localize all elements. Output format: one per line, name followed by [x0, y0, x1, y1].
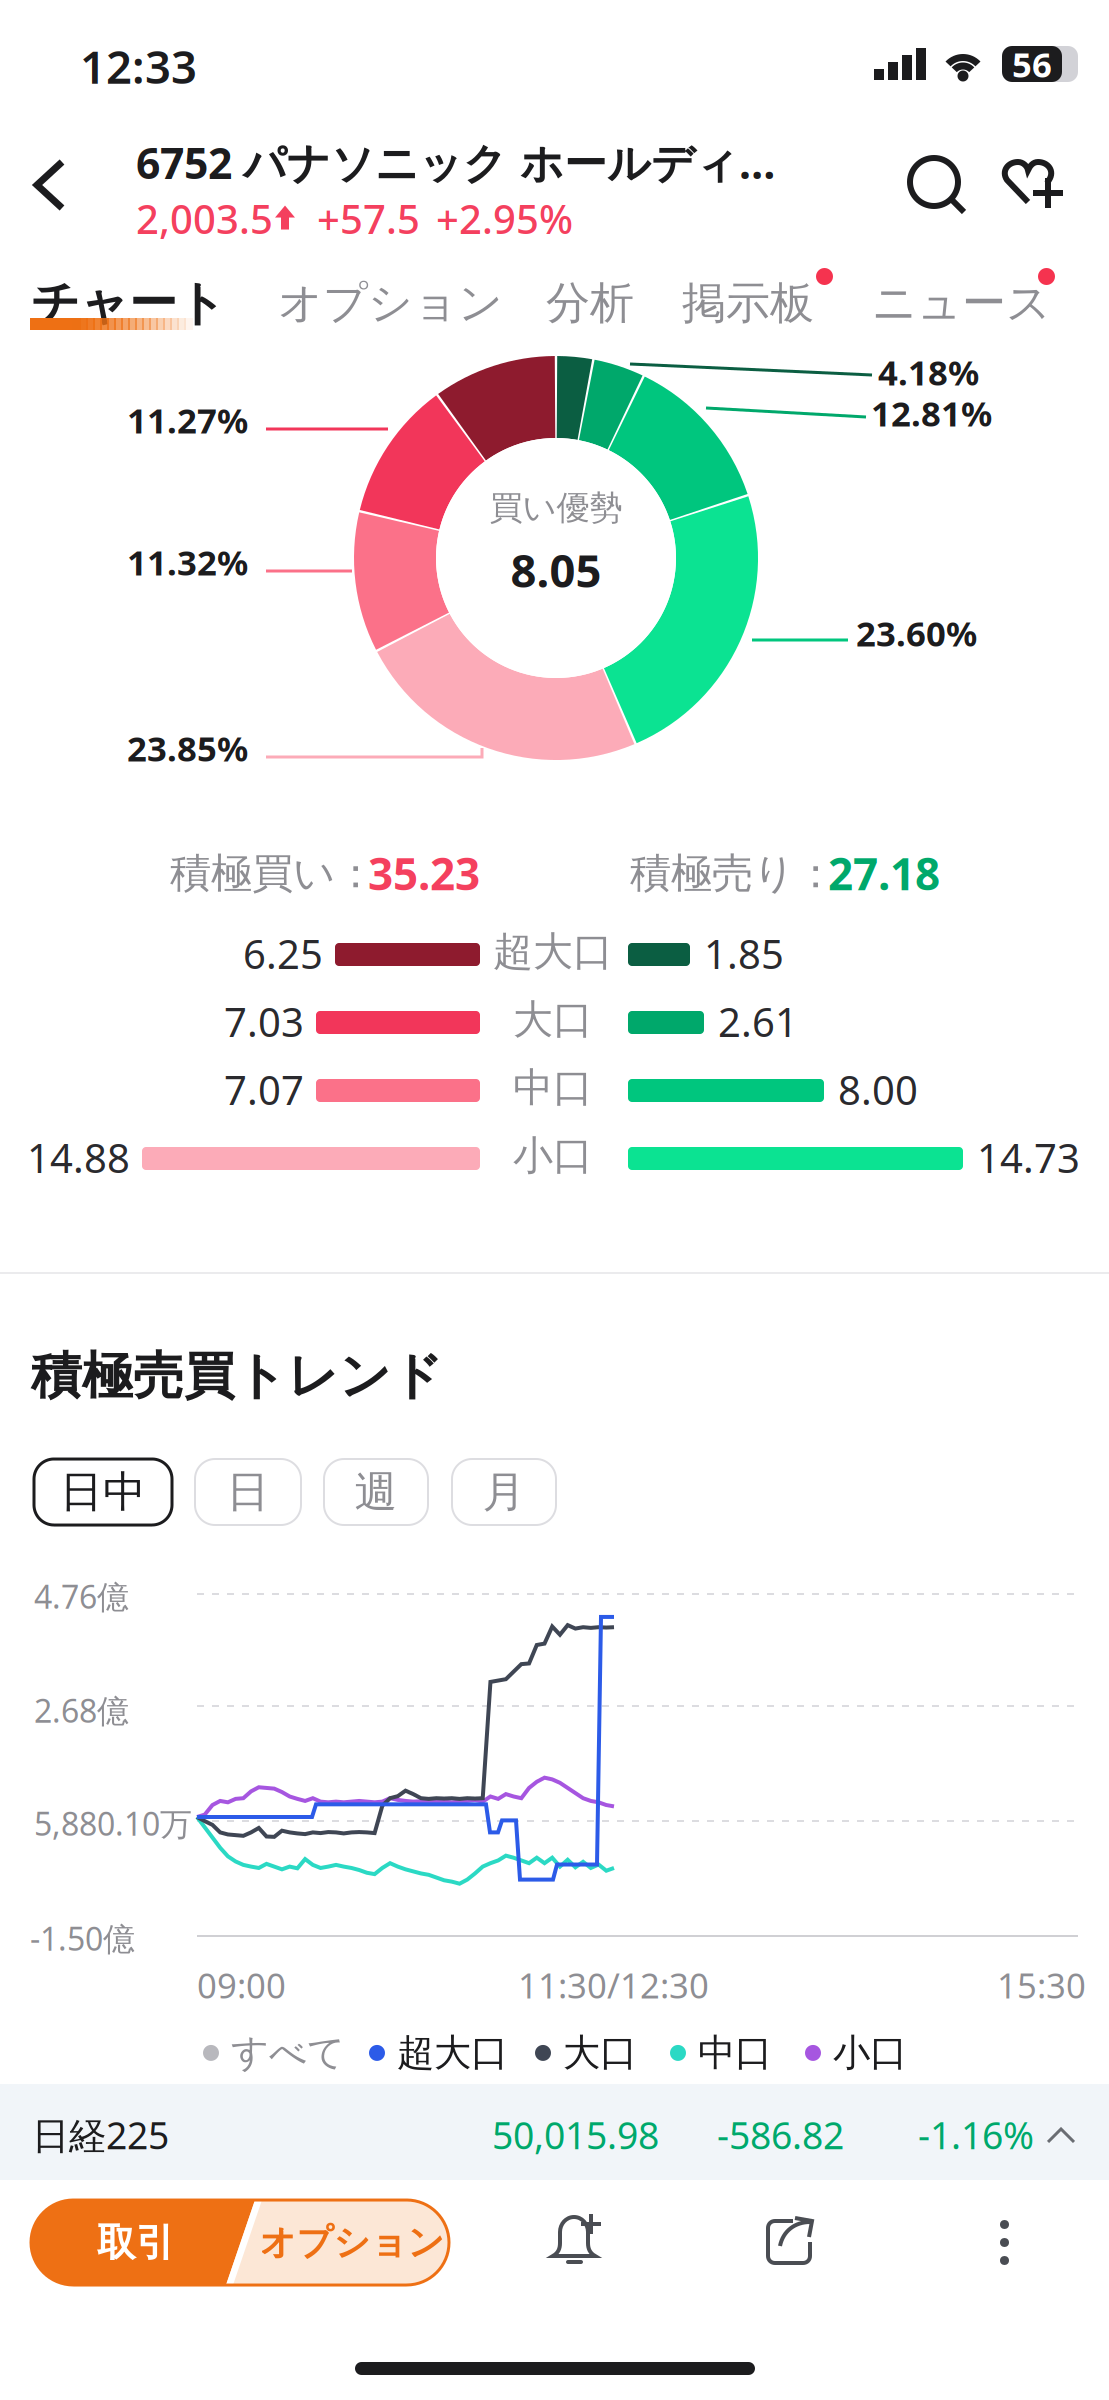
staticText: 2.68億 [34, 1689, 129, 1731]
staticText: 12.81% [871, 390, 992, 436]
staticText: 23.60% [856, 610, 977, 656]
staticText: 27.18 [828, 844, 940, 902]
button[interactable]: チャート [30, 270, 240, 342]
button[interactable]: 週 [324, 1459, 428, 1525]
button[interactable]: Add to watchlist [984, 128, 1096, 232]
button[interactable]: Search [888, 128, 992, 232]
staticText: 超大口 [397, 2030, 508, 2076]
staticText: -1.50億 [30, 1917, 135, 1959]
staticText: 09:00 [197, 1962, 286, 2008]
button[interactable]: 日中 [34, 1459, 172, 1525]
button[interactable]: オプション [278, 276, 503, 330]
staticText: 5,880.10万 [34, 1802, 192, 1844]
staticText: +2.95% [436, 192, 573, 245]
staticText: 取引 [97, 2219, 175, 2266]
button[interactable]: 月 [452, 1459, 556, 1525]
staticText: 15:30 [997, 1962, 1086, 2008]
staticText: 大口 [513, 995, 593, 1044]
staticText: -586.82 [717, 2110, 844, 2160]
staticText: 8.00 [838, 1063, 918, 1116]
staticText: 12:33 [80, 36, 197, 96]
staticText: 1.85 [704, 927, 784, 980]
staticText: 2,003.5 [136, 192, 273, 245]
staticText: チャート [31, 274, 226, 333]
staticText: ニュース [872, 276, 1051, 330]
staticText: 7.07 [224, 1063, 304, 1116]
staticText: すべて [231, 2030, 345, 2076]
staticText: 8.05 [510, 540, 601, 600]
button[interactable]: ニュース [872, 276, 1051, 330]
staticText: 積極買い： [170, 848, 376, 899]
staticText: -1.16% [918, 2110, 1034, 2160]
staticText: 大口 [563, 2030, 637, 2076]
staticText: 日経225 [32, 2110, 169, 2160]
button[interactable]: 取引 [31, 2200, 449, 2285]
button[interactable]: Alerts [528, 2198, 638, 2308]
staticText: 買い優勢 [489, 487, 622, 528]
staticText: オプション [259, 2220, 444, 2265]
button[interactable]: Back [0, 118, 116, 234]
staticText: 11.27% [127, 397, 248, 443]
staticText: 日中 [60, 1466, 146, 1518]
staticText: 14.88 [27, 1131, 130, 1184]
button[interactable]: More [952, 2198, 1052, 2308]
staticText: 6752 パナソニック ホールディ… [136, 134, 775, 191]
staticText: 中口 [698, 2030, 772, 2076]
staticText: 中口 [513, 1063, 593, 1112]
staticText: 6.25 [243, 927, 323, 980]
staticText: オプション [278, 276, 503, 330]
staticText: 分析 [546, 276, 634, 330]
staticText: 月 [482, 1466, 525, 1518]
staticText: 11.32% [127, 539, 248, 585]
staticText: 小口 [833, 2030, 907, 2076]
button[interactable]: 分析 [546, 276, 634, 330]
staticText: 週 [354, 1466, 397, 1518]
button[interactable]: Share [740, 2198, 850, 2308]
staticText: 日 [226, 1466, 269, 1518]
staticText: 4.76億 [34, 1575, 129, 1617]
button[interactable]: 日経225 [0, 2084, 1109, 2180]
staticText: 超大口 [493, 927, 613, 976]
staticText: 14.73 [977, 1131, 1080, 1184]
staticText: 2.61 [718, 995, 798, 1048]
staticText: 積極売買トレンド [31, 1345, 443, 1407]
staticText: 35.23 [368, 844, 480, 902]
staticText: 4.18% [878, 349, 979, 395]
staticText: 掲示板 [682, 276, 814, 330]
staticText: 7.03 [224, 995, 304, 1048]
staticText: 積極売り： [630, 848, 836, 899]
staticText: 23.85% [127, 725, 248, 771]
staticText: 56 [1012, 41, 1052, 87]
staticText: 小口 [513, 1131, 593, 1180]
button[interactable]: 日 [195, 1459, 301, 1525]
staticText: 11:30/12:30 [518, 1962, 709, 2008]
staticText: 50,015.98 [492, 2110, 659, 2160]
staticText: +57.5 [317, 192, 420, 245]
button[interactable]: 掲示板 [682, 276, 814, 330]
